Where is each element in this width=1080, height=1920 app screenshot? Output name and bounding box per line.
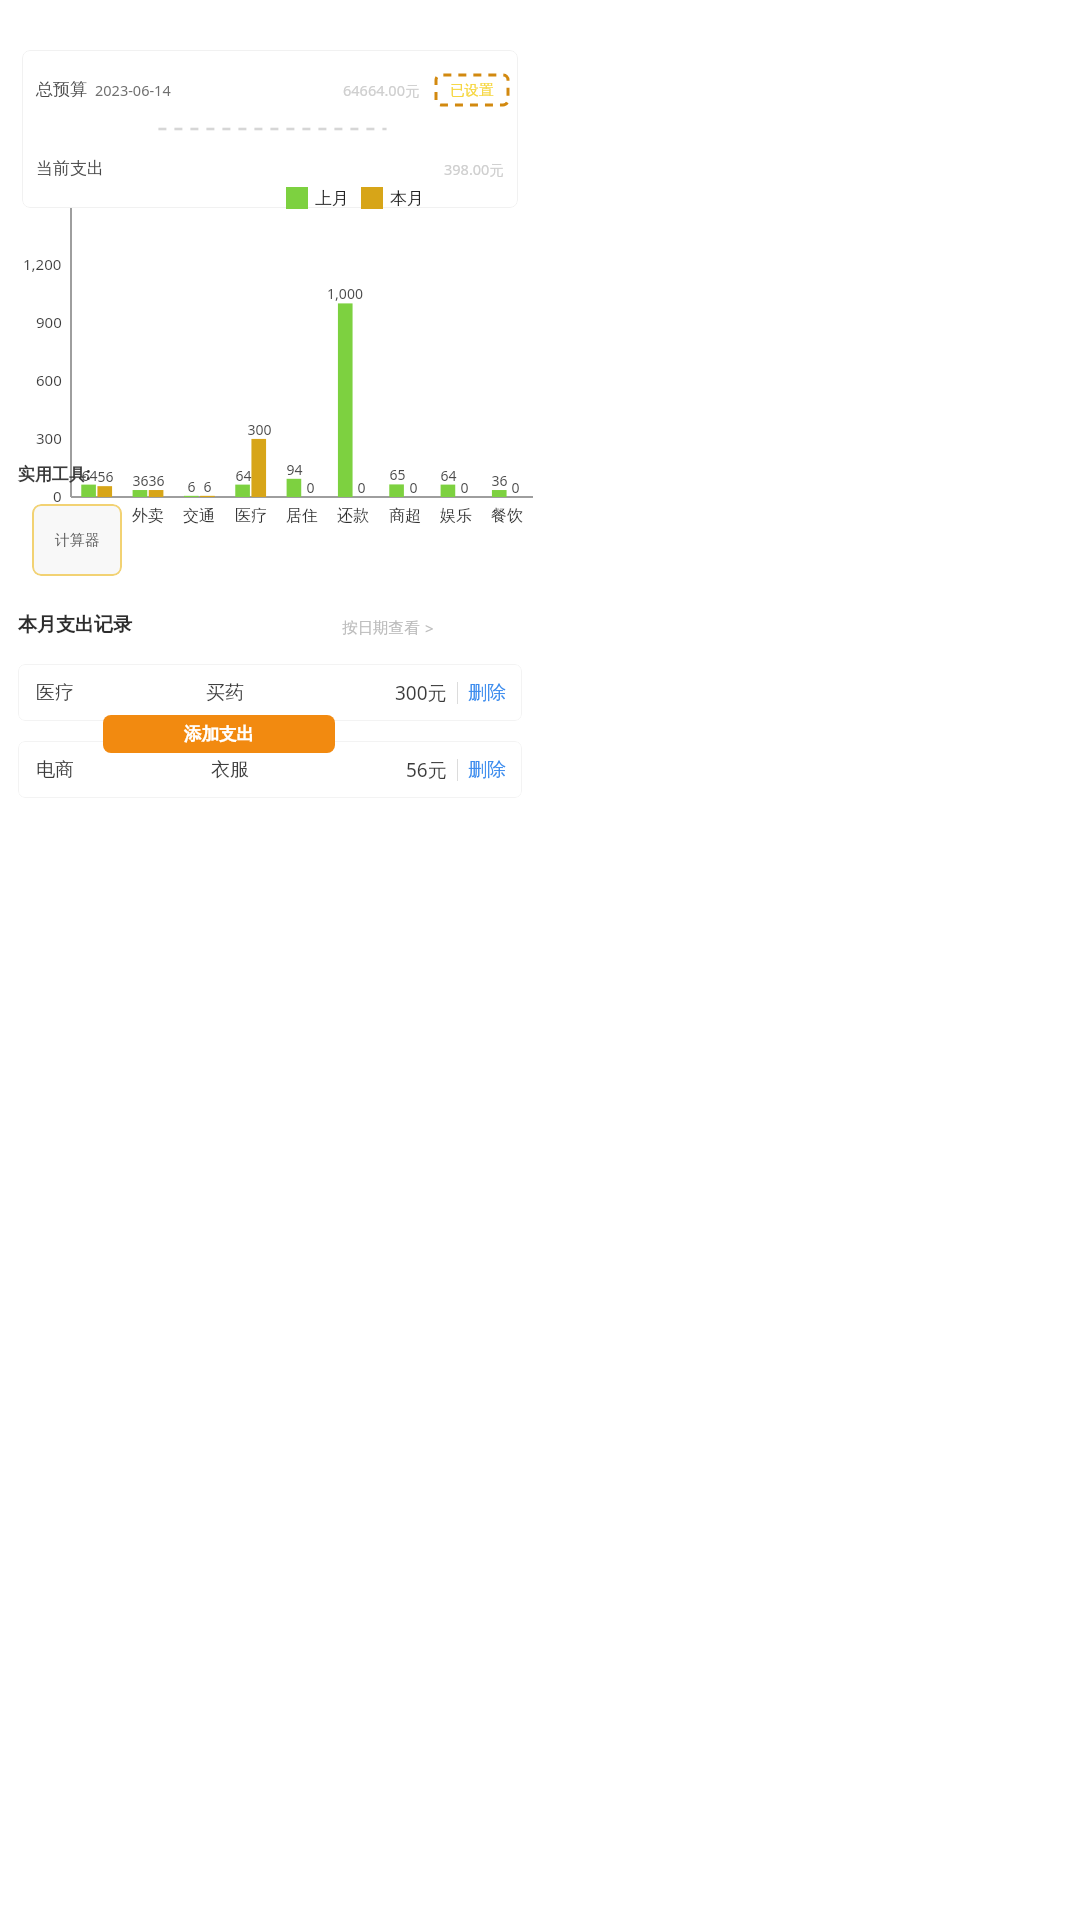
staticText: 900 [36, 312, 62, 332]
staticText: 1,200 [23, 254, 62, 274]
staticText: 已设置 [450, 81, 494, 99]
staticText: 外卖 [132, 506, 164, 526]
staticText: 买药 [206, 681, 244, 705]
staticText: 0 [409, 478, 418, 497]
staticText: 计算器 [55, 531, 100, 550]
staticText: 商超 [389, 506, 421, 526]
staticText: > [425, 618, 434, 638]
staticText: 64 [440, 466, 457, 485]
staticText: 医疗 [235, 506, 267, 526]
button[interactable]: 已设置预算 [436, 75, 508, 105]
staticText: 64664.00元 [343, 80, 420, 100]
staticText: 300 [36, 428, 62, 448]
staticText: 64 [81, 466, 98, 485]
staticText: 本月支出记录 [18, 613, 132, 637]
staticText: 交通 [183, 506, 215, 526]
staticText: 0 [460, 478, 469, 497]
staticText: 36 [148, 471, 165, 490]
staticText: 娱乐 [440, 506, 472, 526]
staticText: 64 [235, 466, 252, 485]
staticText: 本月 [390, 188, 424, 209]
staticText: 2023-06-14 [95, 80, 171, 100]
staticText: 按日期查看 [342, 618, 420, 638]
button[interactable]: 按日期查看 [342, 618, 434, 638]
staticText: 600 [36, 370, 62, 390]
staticText: 56元 [406, 757, 447, 783]
staticText: 94 [286, 460, 303, 479]
staticText: 居住 [286, 506, 318, 526]
staticText: 0 [511, 478, 520, 497]
staticText: 300 [247, 420, 272, 439]
staticText: 65 [389, 465, 406, 484]
staticText: 电商 [36, 758, 74, 782]
staticText: 6 [187, 477, 196, 496]
staticText: 300元 [395, 680, 447, 706]
button[interactable]: 医疗 [18, 664, 522, 721]
staticText: 56 [97, 467, 114, 486]
staticText: 6 [203, 477, 212, 496]
staticText: 删除 [468, 681, 506, 705]
staticText: 36 [132, 471, 149, 490]
staticText: 0 [357, 478, 366, 497]
staticText: 添加支出 [184, 723, 254, 745]
staticText: 衣服 [211, 758, 249, 782]
staticText: 当前支出 [36, 158, 104, 179]
button[interactable]: 电商 [18, 741, 522, 798]
staticText: 1,000 [327, 284, 363, 303]
staticText: 餐饮 [491, 506, 523, 526]
staticText: 上月 [315, 188, 349, 209]
staticText: 0 [306, 478, 315, 497]
button[interactable]: 总预算 [22, 50, 518, 208]
staticText: 实用工具: [18, 462, 91, 485]
staticText: 0 [53, 486, 62, 506]
button[interactable]: 计算器 [32, 504, 122, 576]
button[interactable]: 添加支出 [103, 715, 335, 753]
staticText: 总预算 [36, 79, 87, 100]
staticText: 还款 [337, 506, 369, 526]
staticText: 医疗 [36, 681, 74, 705]
staticText: 36 [491, 471, 508, 490]
staticText: 398.00元 [444, 159, 504, 179]
staticText: 删除 [468, 758, 506, 782]
